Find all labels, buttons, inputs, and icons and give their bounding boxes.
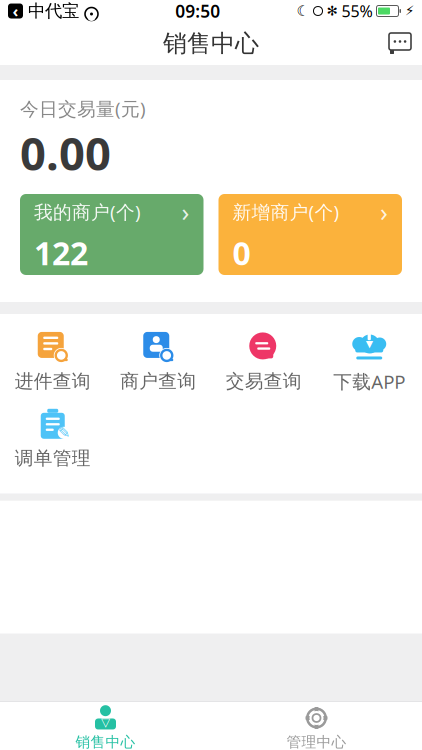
staticText: 新增商户(个) bbox=[232, 199, 339, 224]
staticText: ✻ bbox=[326, 3, 337, 18]
staticText: ☾ bbox=[296, 3, 309, 19]
button[interactable]: 我的商户(个) bbox=[20, 194, 203, 275]
button[interactable]: 商户查询 bbox=[105, 331, 211, 393]
staticText: › bbox=[181, 195, 189, 228]
button[interactable]: 新增商户(个) bbox=[218, 194, 402, 275]
staticText: 销售中心 bbox=[163, 29, 259, 58]
button[interactable]: 进件查询 bbox=[0, 331, 105, 393]
button[interactable]: ▽ bbox=[0, 701, 211, 750]
button[interactable]: ✎ bbox=[0, 408, 105, 470]
button[interactable]: 管理中心 bbox=[211, 701, 422, 750]
staticText: 商户查询 bbox=[120, 370, 196, 393]
staticText: ‹ bbox=[12, 0, 18, 22]
staticText: 销售中心 bbox=[75, 733, 135, 750]
staticText: 55% bbox=[341, 0, 372, 22]
staticText: 0.00 bbox=[20, 123, 111, 183]
button[interactable]: 交易查询 bbox=[211, 331, 316, 393]
staticText: 管理中心 bbox=[286, 733, 346, 750]
button[interactable]: Messages bbox=[378, 21, 422, 65]
button[interactable]: ▾ bbox=[316, 330, 422, 394]
staticText: 调单管理 bbox=[15, 447, 91, 470]
staticText: 下载APP bbox=[333, 369, 405, 394]
staticText: ▾ bbox=[366, 335, 373, 352]
staticText: 我的商户(个) bbox=[34, 199, 141, 224]
staticText: 进件查询 bbox=[15, 370, 91, 393]
staticText: 09:50 bbox=[175, 0, 220, 22]
staticText: ▽ bbox=[101, 715, 110, 729]
staticText: 今日交易量(元) bbox=[20, 96, 146, 121]
staticText: 中代宝 bbox=[28, 0, 79, 22]
staticText: 122 bbox=[34, 232, 88, 274]
staticText: ✎ bbox=[58, 424, 70, 441]
staticText: 交易查询 bbox=[226, 370, 302, 393]
staticText: ⚡︎ bbox=[405, 3, 414, 18]
staticText: › bbox=[380, 195, 388, 228]
staticText: 0 bbox=[232, 232, 250, 274]
